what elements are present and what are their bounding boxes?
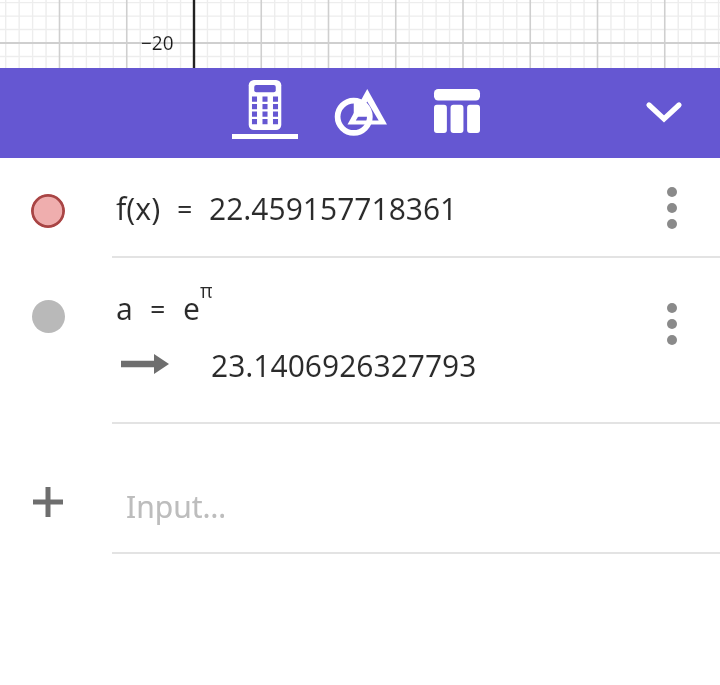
staticText: 23.1406926327793 — [211, 345, 477, 386]
staticText: Input… — [126, 486, 227, 527]
button[interactable]: Toggle visibility f(x) — [0, 158, 720, 258]
button[interactable]: Toggle visibility a — [0, 258, 720, 460]
button[interactable]: Calculator — [226, 80, 303, 150]
staticText: f(x) — [116, 188, 161, 229]
button[interactable]: Collapse — [634, 82, 694, 142]
staticText: 22.459157718361 — [209, 188, 458, 229]
button[interactable]: Add input — [30, 484, 66, 520]
button[interactable]: Geometry — [325, 80, 397, 142]
button[interactable]: More options — [650, 175, 694, 241]
staticText: a — [116, 288, 133, 329]
button[interactable]: Toggle visibility a — [32, 300, 65, 333]
staticText: = — [177, 190, 193, 227]
button[interactable]: Add input — [0, 460, 720, 560]
staticText: e — [183, 288, 200, 329]
staticText: = — [150, 290, 166, 327]
button[interactable]: Toggle visibility f(x) — [31, 194, 65, 228]
button[interactable]: More options — [650, 291, 694, 357]
staticText: π — [200, 278, 213, 304]
button[interactable]: Table — [422, 80, 492, 142]
staticText: −20 — [141, 30, 174, 56]
